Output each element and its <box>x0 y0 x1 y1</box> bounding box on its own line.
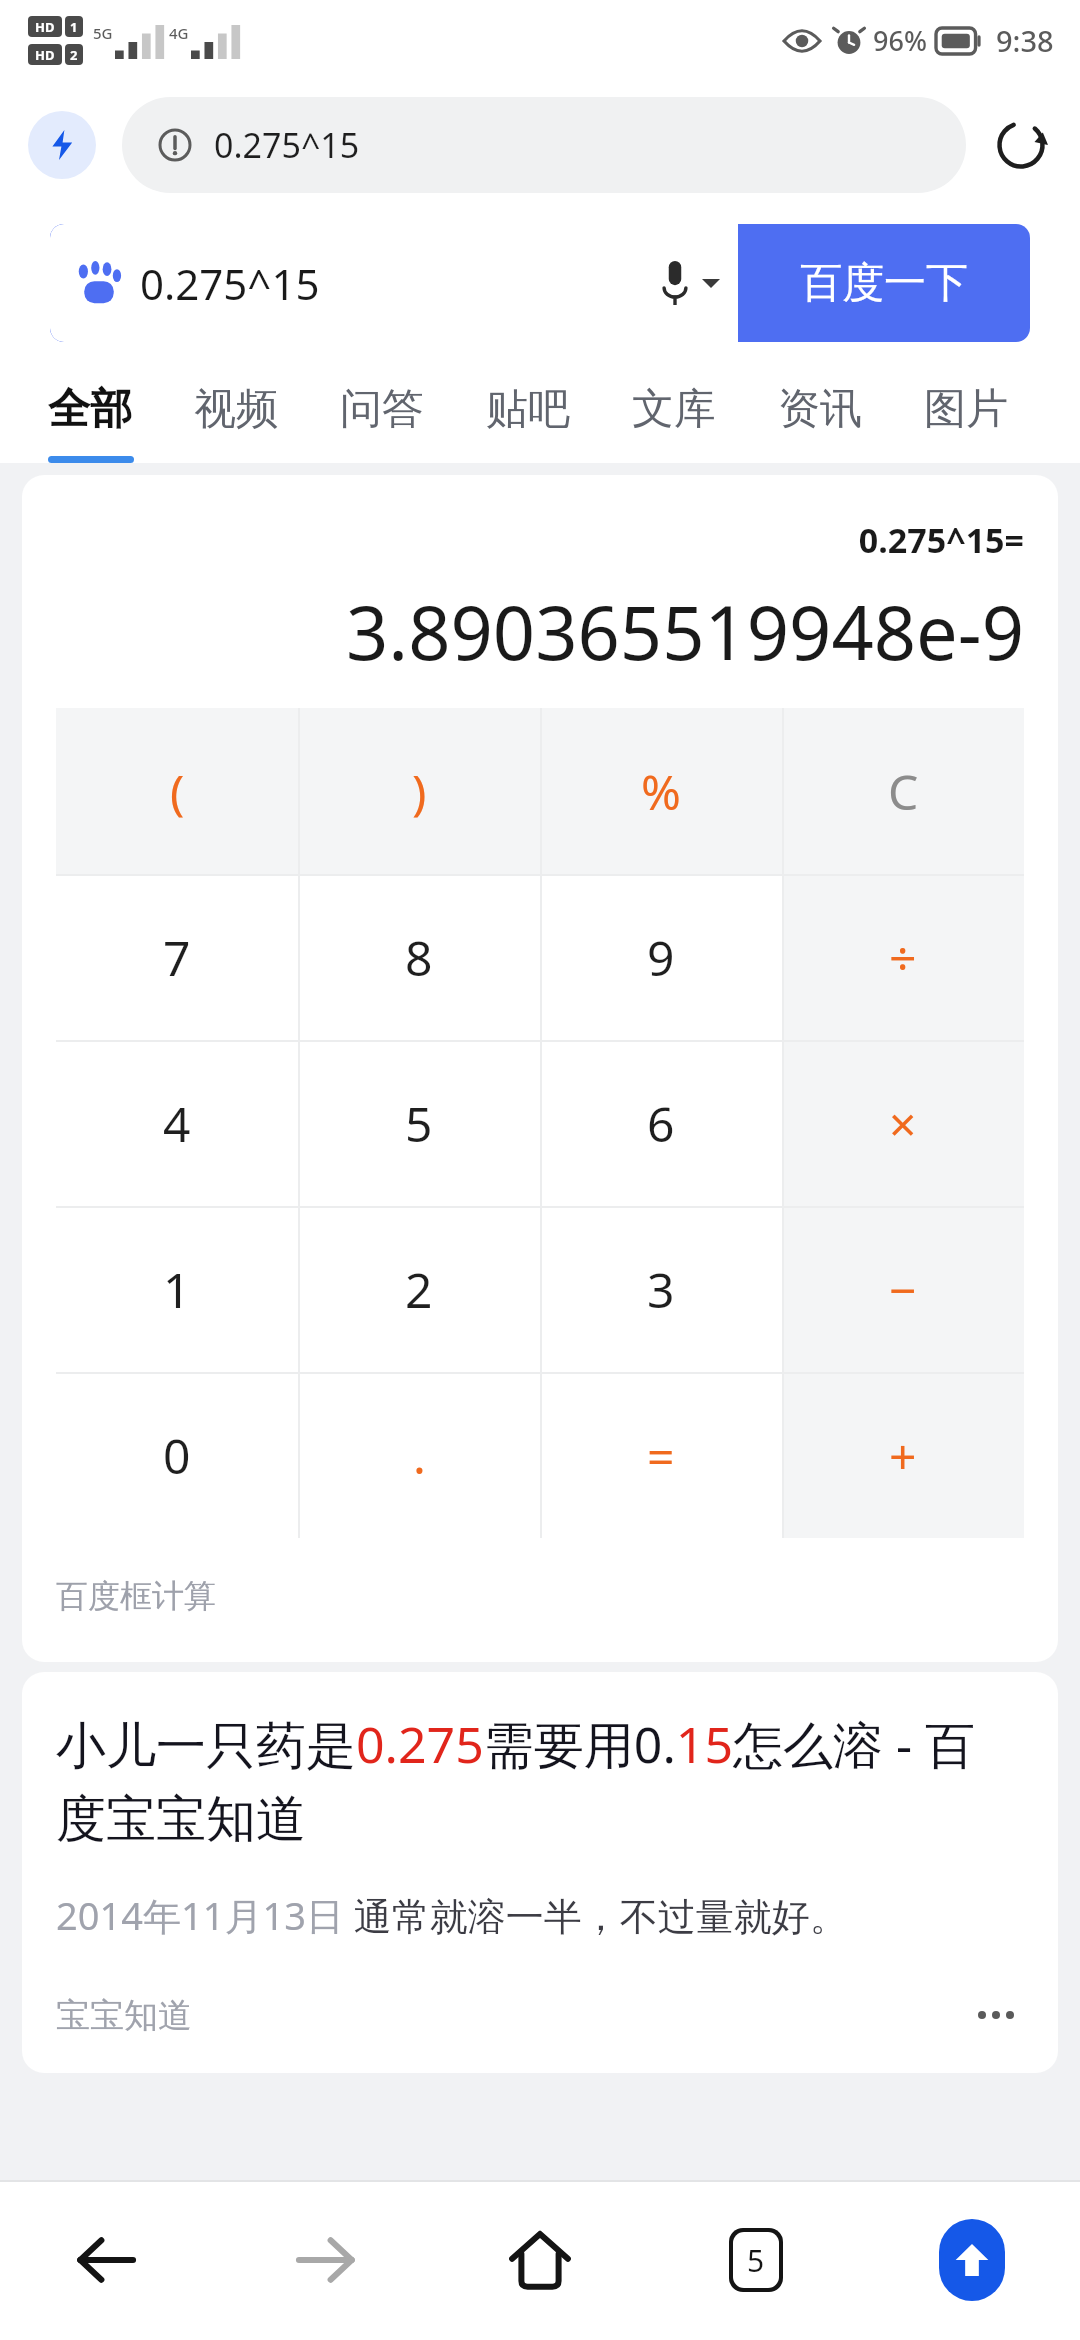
button[interactable]: 图片 <box>924 373 1008 446</box>
staticText: C <box>888 759 919 824</box>
staticText: 5G <box>93 23 113 43</box>
staticText: 1 <box>163 1257 191 1322</box>
staticText: 宝宝知道 <box>56 1994 192 2037</box>
staticText: 4 <box>163 1091 191 1156</box>
button[interactable]: ( <box>56 708 298 874</box>
button[interactable]: % <box>540 708 782 874</box>
button[interactable]: × <box>782 1040 1024 1206</box>
staticText: 0.275^15= <box>56 517 1024 563</box>
staticText: 9 <box>647 925 675 990</box>
staticText: 2 <box>70 46 78 64</box>
staticText: 7 <box>163 925 191 990</box>
staticText: % <box>641 759 681 824</box>
staticText: ) <box>412 759 427 824</box>
staticText: 5 <box>405 1091 433 1156</box>
staticText: 小儿一只药是0.275需要用0.15怎么溶 - 百度宝宝知道 <box>56 1710 1024 1851</box>
staticText: 视频 <box>194 383 278 436</box>
button[interactable]: Forward <box>216 2180 432 2340</box>
button[interactable]: + <box>782 1372 1024 1538</box>
staticText: 2 <box>405 1257 433 1322</box>
button[interactable]: 百度一下 <box>738 224 1030 342</box>
staticText: 文库 <box>632 383 716 436</box>
staticText: ( <box>170 759 185 824</box>
button[interactable]: 小儿一只药是0.275需要用0.15怎么溶 - 百度宝宝知道 <box>22 1672 1058 2073</box>
staticText: + <box>889 1423 917 1488</box>
staticText: ÷ <box>889 925 917 990</box>
button[interactable]: 9 <box>540 874 782 1040</box>
staticText: 96% <box>873 22 927 59</box>
staticText: 3.890365519948e-9 <box>56 581 1024 682</box>
staticText: 1 <box>70 18 78 36</box>
button[interactable]: C <box>782 708 1024 874</box>
staticText: 3 <box>647 1257 675 1322</box>
staticText: 4G <box>169 23 189 43</box>
staticText: = <box>647 1423 675 1488</box>
staticText: 百度一下 <box>800 257 968 310</box>
button[interactable]: 2 <box>298 1206 540 1372</box>
staticText: 5 <box>747 2240 765 2281</box>
button[interactable]: ) <box>298 708 540 874</box>
button[interactable]: 4 <box>56 1040 298 1206</box>
button[interactable]: 1 <box>56 1206 298 1372</box>
staticText: 全部 <box>48 383 132 436</box>
button[interactable]: 资讯 <box>778 373 862 446</box>
button[interactable]: 6 <box>540 1040 782 1206</box>
staticText: 问答 <box>340 383 424 436</box>
button[interactable]: 问答 <box>340 373 424 446</box>
button[interactable]: 5 <box>298 1040 540 1206</box>
button[interactable]: 视频 <box>194 373 278 446</box>
button[interactable]: 8 <box>298 874 540 1040</box>
button[interactable]: 0 <box>56 1372 298 1538</box>
staticText: 0.275^15 <box>214 122 360 168</box>
button[interactable]: ÷ <box>782 874 1024 1040</box>
button[interactable]: 7 <box>56 874 298 1040</box>
button[interactable]: Reload <box>990 114 1052 176</box>
staticText: HD <box>35 18 55 36</box>
button[interactable]: − <box>782 1206 1024 1372</box>
button[interactable]: Fast mode <box>28 111 96 179</box>
button[interactable]: Scroll to top <box>864 2180 1080 2340</box>
button[interactable]: 0.275^15 <box>50 224 738 342</box>
button[interactable]: = <box>540 1372 782 1538</box>
button[interactable]: Back <box>0 2180 216 2340</box>
staticText: . <box>413 1423 426 1488</box>
staticText: × <box>889 1091 917 1156</box>
staticText: 资讯 <box>778 383 862 436</box>
button[interactable]: Home <box>432 2180 648 2340</box>
button[interactable]: 0.275^15 <box>122 97 966 193</box>
staticText: 8 <box>405 925 433 990</box>
button[interactable]: 贴吧 <box>486 373 570 446</box>
staticText: 百度框计算 <box>56 1576 216 1616</box>
button[interactable]: Tabs <box>648 2180 864 2340</box>
staticText: 0.275^15 <box>140 255 662 312</box>
staticText: 2014年11月13日 通常就溶一半，不过量就好。 <box>56 1889 848 1941</box>
button[interactable]: 3 <box>540 1206 782 1372</box>
button[interactable]: . <box>298 1372 540 1538</box>
staticText: HD <box>35 46 55 64</box>
button[interactable]: More <box>968 1987 1024 2043</box>
button[interactable]: 全部 <box>48 373 132 446</box>
staticText: 0 <box>163 1423 191 1488</box>
staticText: 9:38 <box>996 21 1054 60</box>
staticText: − <box>889 1257 917 1322</box>
staticText: 图片 <box>924 383 1008 436</box>
staticText: 6 <box>647 1091 675 1156</box>
staticText: 贴吧 <box>486 383 570 436</box>
button[interactable]: 文库 <box>632 373 716 446</box>
